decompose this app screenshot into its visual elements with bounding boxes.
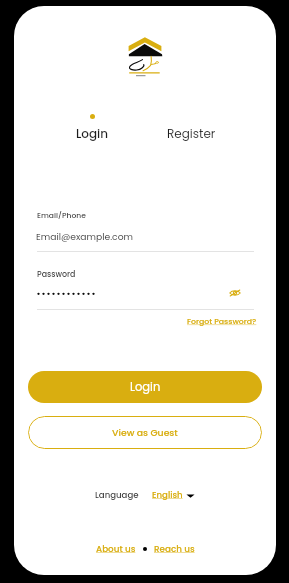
button[interactable]: About us [96, 543, 136, 555]
button[interactable]: Register [161, 125, 221, 142]
staticText: Email@example.com [36, 230, 134, 243]
staticText: Password [37, 269, 76, 280]
staticText: Register [167, 125, 216, 142]
button[interactable]: Login [66, 114, 118, 142]
button[interactable]: Show password [229, 288, 241, 298]
button[interactable]: View as Guest [28, 416, 262, 449]
staticText: Login [76, 125, 109, 142]
staticText: Language [95, 489, 139, 501]
button[interactable]: Login [28, 371, 262, 403]
button[interactable]: Forgot Password? [187, 316, 257, 327]
button[interactable]: English [152, 489, 195, 501]
staticText: English [152, 489, 183, 501]
staticText: View as Guest [112, 426, 178, 439]
staticText: Email/Phone [37, 210, 86, 221]
button[interactable]: Reach us [154, 543, 195, 555]
staticText: Login [130, 379, 161, 395]
